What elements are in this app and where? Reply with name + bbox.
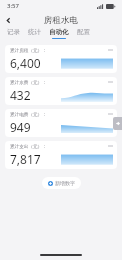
staticText: 新增数字 (55, 180, 75, 186)
button[interactable]: 统计 (26, 28, 43, 39)
button[interactable]: 返回 (0, 12, 16, 28)
staticText: 3:57 (7, 2, 19, 10)
staticText: 房租水电 (44, 15, 78, 26)
staticText: 累计电费（元）： (10, 112, 47, 118)
button[interactable]: 累计电费（元）： (5, 109, 117, 137)
staticText: 7,817 (10, 151, 41, 166)
staticText: 949 (10, 119, 31, 134)
button[interactable]: 累计支出（元）： (5, 141, 117, 169)
button[interactable]: 配置 (75, 28, 92, 39)
staticText: 432 (10, 87, 31, 102)
button[interactable]: 展开 (113, 117, 122, 130)
button[interactable]: 累计房租（元）： (5, 45, 117, 73)
button[interactable]: 累计水费（元）： (5, 77, 117, 105)
staticText: 自动化 (49, 28, 69, 36)
staticText: 统计 (28, 28, 41, 36)
staticText: 累计房租（元）： (10, 48, 47, 54)
button[interactable]: 自动化 (47, 28, 71, 39)
staticText: 配置 (77, 28, 90, 36)
staticText: 6,400 (10, 55, 41, 70)
staticText: 累计水费（元）： (10, 80, 47, 86)
button[interactable]: 记录 (5, 28, 22, 39)
staticText: 累计支出（元）： (10, 144, 47, 150)
button[interactable]: 新增数字 (42, 177, 81, 189)
staticText: 记录 (7, 28, 20, 36)
